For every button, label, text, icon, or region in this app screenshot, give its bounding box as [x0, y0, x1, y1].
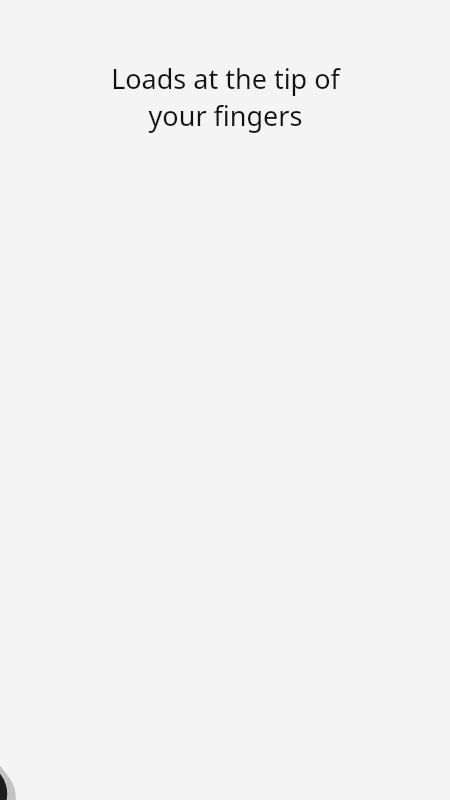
staticText: Loads at the tip of your fingers: [111, 60, 340, 134]
